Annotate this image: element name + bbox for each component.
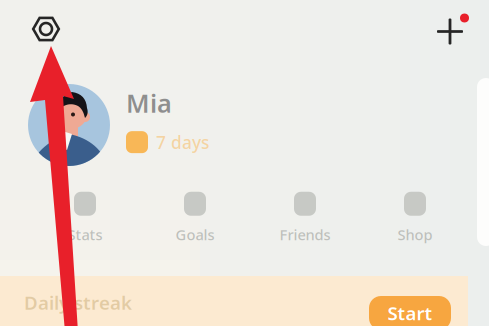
button[interactable]: Friends	[250, 192, 360, 244]
button[interactable]: Start	[369, 296, 451, 326]
staticText: Friends	[279, 225, 330, 244]
staticText: Shop	[397, 225, 432, 244]
button[interactable]: Shop	[360, 192, 470, 244]
button[interactable]: Goals	[140, 192, 250, 244]
staticText: Start	[387, 301, 432, 325]
button[interactable]: Settings	[32, 15, 60, 43]
button[interactable]: Stats	[30, 192, 140, 244]
staticText: 7 days	[156, 131, 209, 154]
button[interactable]: Add	[437, 13, 469, 44]
staticText: Mia	[126, 86, 172, 120]
staticText: Stats	[67, 225, 102, 244]
staticText: Goals	[175, 225, 214, 244]
staticText: Daily streak	[24, 290, 132, 315]
